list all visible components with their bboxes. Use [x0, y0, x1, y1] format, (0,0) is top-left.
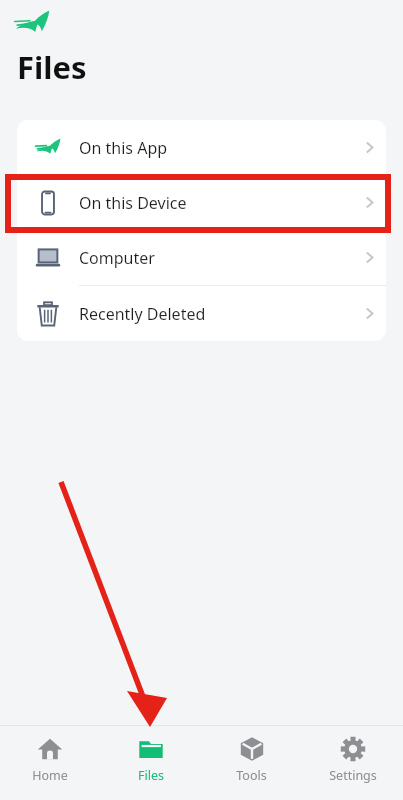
button[interactable]: Computer	[17, 230, 386, 286]
button[interactable]: On this Device	[17, 175, 386, 230]
staticText: On this App	[79, 137, 352, 159]
staticText: Tools	[236, 767, 267, 784]
button[interactable]: Settings	[302, 726, 403, 800]
other: Home	[37, 736, 63, 762]
other: Tools	[239, 736, 265, 762]
button[interactable]: Recently Deleted	[17, 286, 386, 341]
staticText: Home	[32, 767, 68, 784]
staticText: Settings	[329, 767, 377, 784]
other: Settings	[340, 736, 366, 762]
staticText: On this Device	[79, 192, 352, 214]
staticText: Computer	[79, 247, 352, 269]
staticText: Recently Deleted	[79, 303, 352, 325]
button[interactable]: Files	[100, 726, 201, 800]
button[interactable]: Home	[0, 726, 100, 800]
other: Files	[138, 736, 164, 762]
staticText: Files	[138, 767, 164, 784]
button[interactable]: On this App	[17, 120, 386, 175]
button[interactable]: Tools	[201, 726, 302, 800]
staticText: Files	[17, 46, 87, 88]
